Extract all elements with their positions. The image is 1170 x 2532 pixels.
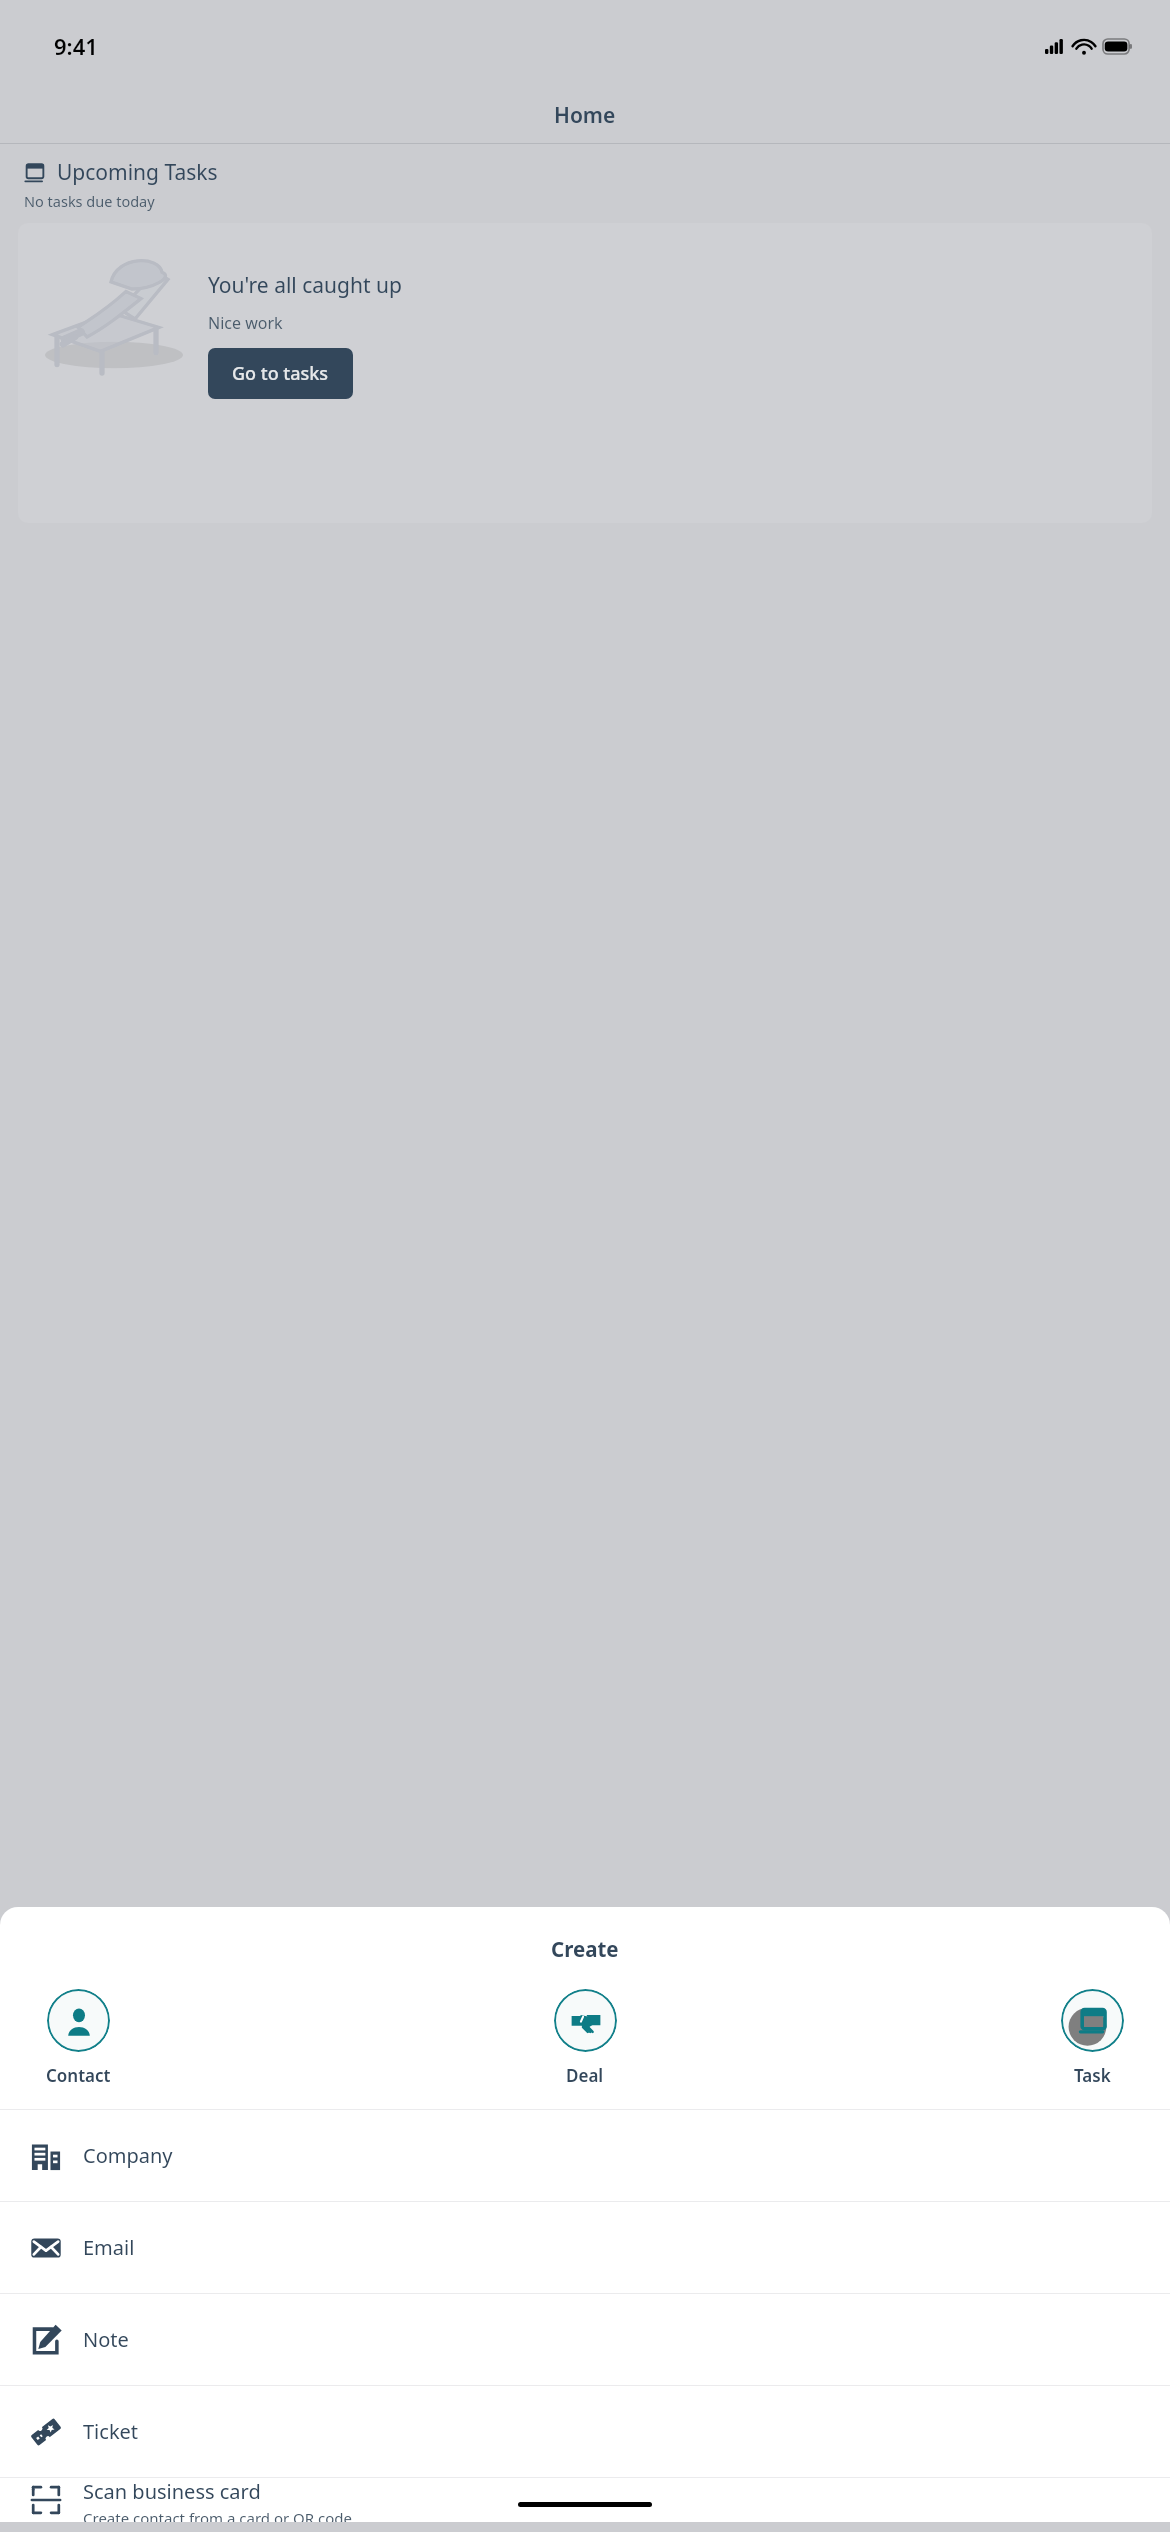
staticText: Ticket [83,2418,139,2445]
button[interactable]: Go to tasks [208,348,353,399]
staticText: No tasks due today [24,191,155,211]
staticText: 9:41 [54,31,98,61]
staticText: Scan business card [83,2478,261,2505]
staticText: Nice work [208,312,283,334]
button[interactable]: Note [0,2294,1170,2385]
staticText: Go to tasks [232,361,329,386]
staticText: Create [551,1935,619,1963]
button[interactable]: Task [1044,1989,1140,2087]
staticText: Home [554,101,616,130]
button[interactable]: Contact [30,1989,126,2087]
button[interactable]: Company [0,2110,1170,2201]
staticText: Contact [46,2064,111,2087]
staticText: Email [83,2234,135,2261]
button[interactable]: Ticket [0,2386,1170,2477]
button[interactable]: Deal [537,1989,633,2087]
staticText: Deal [566,2064,604,2087]
button[interactable]: Email [0,2202,1170,2293]
staticText: Task [1074,2064,1111,2087]
staticText: You're all caught up [208,271,402,300]
staticText: Upcoming Tasks [57,158,218,187]
button[interactable]: Scan business card [0,2478,1170,2522]
staticText: Create contact from a card or QR code [83,2508,352,2522]
staticText: Note [83,2326,129,2353]
staticText: Company [83,2142,173,2169]
